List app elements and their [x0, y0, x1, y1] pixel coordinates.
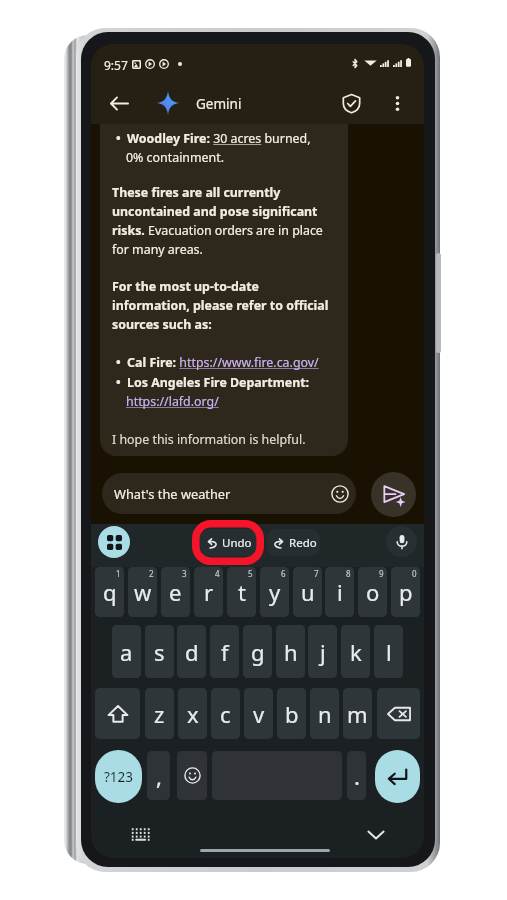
- staticText: 6: [281, 568, 286, 579]
- staticText: z: [154, 699, 165, 729]
- staticText: 3: [182, 568, 187, 579]
- staticText: f: [221, 637, 229, 667]
- button[interactable]: u: [293, 567, 322, 617]
- staticText: 7: [314, 568, 319, 579]
- staticText: ,: [156, 761, 162, 791]
- button[interactable]: l: [374, 625, 403, 678]
- staticText: k: [350, 637, 362, 667]
- staticText: o: [366, 577, 380, 607]
- button[interactable]: ,: [147, 751, 170, 800]
- staticText: y: [269, 577, 281, 607]
- button[interactable]: j: [308, 625, 337, 678]
- staticText: c: [220, 699, 231, 729]
- button[interactable]: More options: [381, 87, 413, 119]
- staticText: 5: [248, 568, 253, 579]
- staticText: 9:57: [104, 57, 128, 73]
- button[interactable]: Undo: [200, 529, 259, 556]
- button[interactable]: k: [341, 625, 370, 678]
- button[interactable]: [177, 751, 207, 800]
- button[interactable]: .: [347, 751, 366, 800]
- button[interactable]: [95, 688, 140, 739]
- staticText: • Cal Fire: https://www.fire.ca.gov/: [116, 354, 319, 371]
- staticText: 1: [116, 568, 121, 579]
- button[interactable]: s: [145, 625, 174, 678]
- staticText: u: [301, 577, 315, 607]
- staticText: 9: [379, 568, 384, 579]
- staticText: l: [386, 637, 392, 667]
- button[interactable]: Change keyboard: [131, 825, 151, 841]
- button[interactable]: p: [391, 567, 420, 617]
- staticText: ?123: [104, 768, 134, 786]
- button[interactable]: Toolbox: [98, 526, 130, 558]
- button[interactable]: f: [210, 625, 239, 678]
- staticText: I hope this information is helpful.: [112, 431, 306, 448]
- button[interactable]: h: [276, 625, 305, 678]
- button[interactable]: Emoji: [327, 481, 352, 506]
- staticText: • Woodley Fire: 30 acres burned,: [116, 130, 311, 147]
- button[interactable]: Enter: [375, 750, 420, 803]
- button[interactable]: Back: [103, 87, 135, 119]
- staticText: 8: [346, 568, 351, 579]
- staticText: s: [154, 637, 165, 667]
- button[interactable]: e: [161, 567, 190, 617]
- staticText: These fires are all currently uncontaine…: [112, 184, 323, 258]
- staticText: 0% containment.: [126, 149, 225, 166]
- button[interactable]: a: [112, 625, 141, 678]
- staticText: h: [284, 637, 298, 667]
- button[interactable]: Redo: [267, 529, 320, 556]
- staticText: n: [318, 699, 332, 729]
- button[interactable]: Hide keyboard: [366, 825, 386, 845]
- button[interactable]: t: [227, 567, 256, 617]
- staticText: t: [238, 577, 246, 607]
- staticText: m: [347, 699, 368, 729]
- button[interactable]: b: [277, 688, 306, 739]
- staticText: What's the weather: [114, 485, 231, 502]
- button[interactable]: q: [95, 567, 124, 617]
- button[interactable]: n: [310, 688, 339, 739]
- staticText: g: [251, 637, 265, 667]
- button[interactable]: o: [358, 567, 387, 617]
- button[interactable]: m: [343, 688, 372, 739]
- button[interactable]: [102, 473, 356, 514]
- button[interactable]: Voice input: [386, 526, 417, 557]
- staticText: • Los Angeles Fire Department:: [116, 374, 310, 391]
- staticText: Redo: [289, 535, 317, 551]
- staticText: https://lafd.org/: [126, 393, 219, 410]
- button[interactable]: c: [211, 688, 240, 739]
- button[interactable]: y: [260, 567, 289, 617]
- staticText: 4: [215, 568, 220, 579]
- staticText: For the most up-to-date information, ple…: [112, 278, 329, 333]
- staticText: i: [337, 577, 343, 607]
- staticText: 2: [149, 568, 154, 579]
- button[interactable]: Privacy hub: [335, 87, 367, 119]
- button[interactable]: d: [177, 625, 206, 678]
- staticText: q: [103, 577, 117, 607]
- staticText: d: [185, 637, 199, 667]
- button[interactable]: x: [178, 688, 207, 739]
- button[interactable]: i: [325, 567, 354, 617]
- staticText: v: [253, 699, 265, 729]
- button[interactable]: z: [145, 688, 174, 739]
- button[interactable]: ?123: [95, 750, 142, 803]
- button[interactable]: w: [128, 567, 157, 617]
- staticText: 0: [412, 568, 417, 579]
- staticText: r: [204, 577, 214, 607]
- button[interactable]: r: [194, 567, 223, 617]
- staticText: w: [134, 577, 152, 607]
- staticText: Gemini: [196, 95, 242, 113]
- staticText: a: [120, 637, 133, 667]
- staticText: b: [285, 699, 299, 729]
- staticText: .: [354, 761, 360, 791]
- staticText: x: [187, 699, 199, 729]
- button[interactable]: [377, 688, 420, 739]
- button[interactable]: g: [243, 625, 272, 678]
- button[interactable]: v: [244, 688, 273, 739]
- staticText: e: [169, 577, 182, 607]
- staticText: j: [320, 637, 326, 667]
- button[interactable]: Send: [371, 472, 416, 517]
- staticText: Undo: [222, 535, 252, 551]
- staticText: p: [399, 577, 413, 607]
